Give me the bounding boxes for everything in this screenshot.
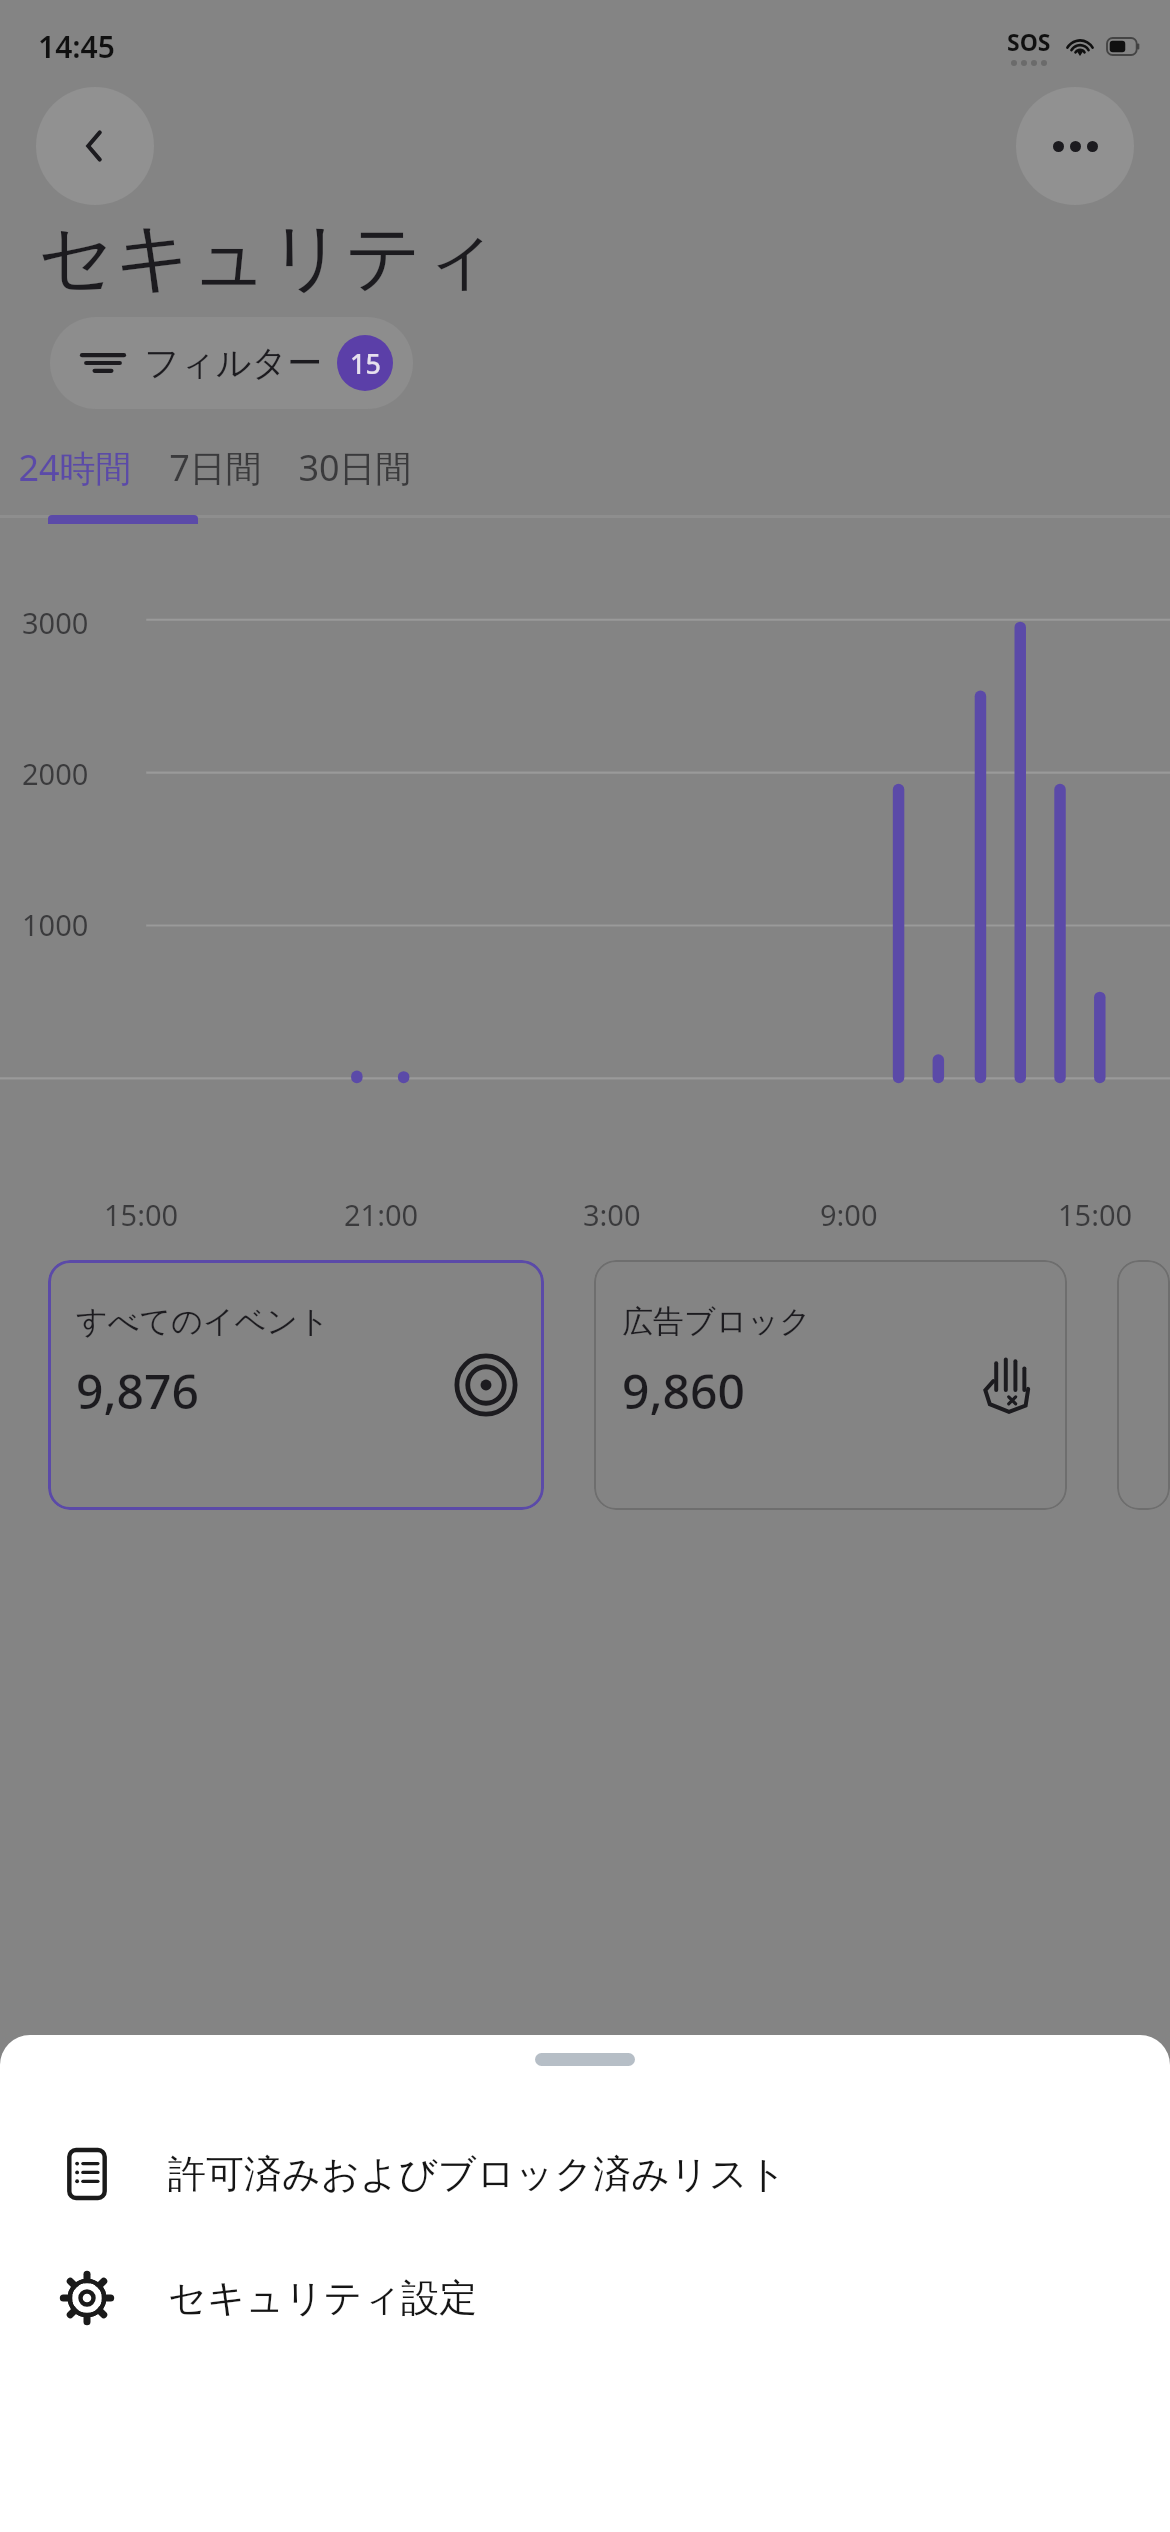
button[interactable]: 広告ブロック xyxy=(594,1260,1067,1510)
staticText: 3000 xyxy=(22,603,89,642)
staticText: 30日間 xyxy=(298,443,412,492)
staticText: セキュリティ xyxy=(38,211,499,305)
staticText: セキュリティ設定 xyxy=(168,2274,478,2322)
staticText: 9,860 xyxy=(622,1358,745,1423)
staticText: 広告ブロック xyxy=(622,1302,811,1341)
staticText: 24時間 xyxy=(18,443,132,492)
staticText: SOS xyxy=(1007,26,1051,57)
staticText: 3:00 xyxy=(583,1195,641,1234)
button[interactable]: フィルター xyxy=(50,317,413,409)
button[interactable]: 30日間 xyxy=(280,431,430,503)
button[interactable]: More options xyxy=(1016,87,1134,205)
staticText: 9:00 xyxy=(820,1195,878,1234)
button[interactable]: 許可済みおよびブロック済みリスト xyxy=(0,2122,1170,2226)
staticText: 許可済みおよびブロック済みリスト xyxy=(168,2150,787,2198)
button[interactable]: Back xyxy=(36,87,154,205)
button[interactable]: すべてのイベント xyxy=(48,1260,544,1510)
staticText: 21:00 xyxy=(344,1195,419,1234)
staticText: 7日間 xyxy=(169,443,262,492)
staticText: 15:00 xyxy=(1058,1195,1133,1234)
staticText: フィルター xyxy=(144,341,323,385)
staticText: 15 xyxy=(350,345,381,382)
staticText: 15:00 xyxy=(104,1195,179,1234)
staticText: 1000 xyxy=(22,905,89,944)
staticText: 9,876 xyxy=(76,1358,199,1423)
staticText: すべてのイベント xyxy=(76,1302,330,1341)
button[interactable]: 24時間 xyxy=(0,431,150,503)
staticText: 2000 xyxy=(22,754,89,793)
button[interactable]: 7日間 xyxy=(150,431,280,503)
staticText: 14:45 xyxy=(38,26,115,67)
button[interactable] xyxy=(1117,1260,1170,1510)
button[interactable]: セキュリティ設定 xyxy=(0,2246,1170,2350)
